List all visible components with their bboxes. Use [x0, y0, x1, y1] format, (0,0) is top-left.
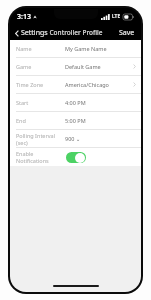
button[interactable]: Game: [10, 58, 141, 75]
staticText: Polling Interval (sec): [16, 132, 65, 146]
staticText: Save: [119, 28, 135, 38]
button[interactable]: Enable Notifications: [10, 148, 141, 166]
button[interactable]: Polling Interval (sec): [10, 130, 141, 147]
staticText: Settings: [21, 28, 48, 38]
staticText: End: [16, 117, 65, 124]
staticText: Name: [16, 45, 65, 52]
staticText: Game: [16, 63, 65, 70]
staticText: Controller Profile: [49, 28, 103, 37]
staticText: 4:00 PM: [65, 99, 133, 106]
staticText: Time Zone: [16, 81, 65, 88]
button[interactable]: Save: [113, 26, 141, 40]
staticText: 3:13: [17, 12, 31, 22]
staticText: 900 ⌄: [65, 135, 133, 142]
staticText: America/Chicago: [65, 81, 133, 88]
staticText: LTE: [112, 13, 121, 20]
button[interactable]: Start: [10, 94, 141, 111]
button[interactable]: Name: [10, 40, 141, 57]
staticText: 5:00 PM: [65, 117, 133, 124]
staticText: Default Game: [65, 63, 133, 70]
button[interactable]: Settings: [10, 26, 52, 40]
button[interactable]: End: [10, 112, 141, 129]
button[interactable]: Enable notifications toggle, on: [66, 152, 86, 163]
button[interactable]: Time Zone: [10, 76, 141, 93]
staticText: Start: [16, 99, 65, 106]
staticText: Enable Notifications: [16, 150, 66, 164]
staticText: My Game Name: [65, 45, 133, 52]
